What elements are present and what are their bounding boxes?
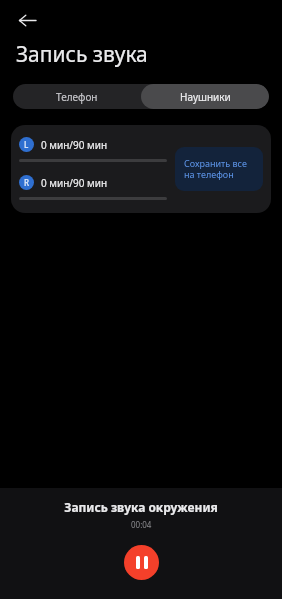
staticText: 0 мин/90 мин	[41, 138, 108, 152]
button[interactable]: Телефон	[13, 84, 141, 109]
staticText: R	[24, 177, 30, 188]
button[interactable]: Pause recording	[124, 545, 159, 580]
staticText: 00:04	[131, 519, 152, 530]
staticText: Запись звука окружения	[64, 499, 218, 515]
staticText: Наушники	[180, 90, 231, 104]
staticText: 0 мин/90 мин	[41, 176, 108, 190]
button[interactable]: Back	[8, 1, 46, 39]
staticText: Запись звука	[16, 40, 148, 69]
button[interactable]: Сохранить все на телефон	[175, 147, 263, 191]
button[interactable]: Наушники	[141, 84, 269, 109]
staticText: Сохранить все на телефон	[184, 157, 254, 181]
staticText: L	[24, 139, 29, 150]
staticText: Телефон	[56, 90, 98, 104]
